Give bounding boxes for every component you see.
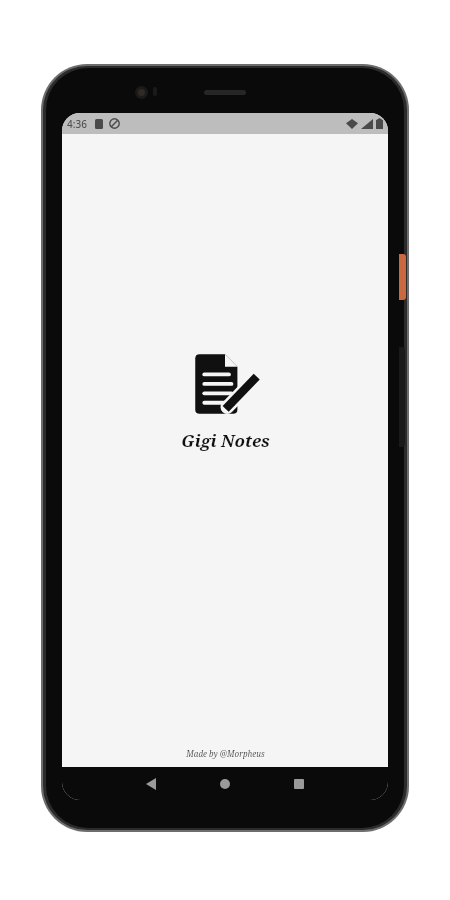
staticText: 4:36 bbox=[67, 117, 87, 131]
staticText: Made by @Morpheus bbox=[186, 748, 265, 759]
button[interactable]: Recent apps bbox=[262, 767, 336, 800]
button[interactable]: Home bbox=[188, 767, 262, 800]
other: Gigi Notes logo bbox=[194, 353, 256, 415]
staticText: Gigi Notes bbox=[181, 429, 270, 452]
button[interactable]: Back bbox=[114, 767, 188, 800]
